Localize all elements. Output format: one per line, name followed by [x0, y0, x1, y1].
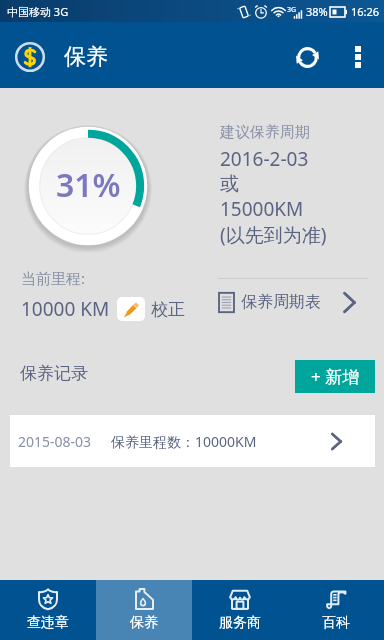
- staticText: 10000 KM: [21, 296, 110, 322]
- staticText: 15000KM: [220, 196, 304, 222]
- button[interactable]: Refresh: [282, 32, 332, 82]
- staticText: 保养周期表: [241, 292, 321, 312]
- staticText: 31%: [56, 163, 121, 207]
- staticText: 2015-08-03: [18, 432, 92, 451]
- button[interactable]: 保养周期表: [218, 288, 370, 316]
- button[interactable]: + 新增: [295, 360, 375, 393]
- button[interactable]: 查违章: [0, 580, 96, 640]
- button[interactable]: 保养: [96, 580, 192, 640]
- staticText: 建议保养周期: [220, 123, 310, 142]
- staticText: 2016-2-03: [220, 146, 309, 172]
- staticText: 保养里程数：10000KM: [111, 432, 257, 451]
- staticText: 或: [220, 172, 239, 196]
- staticText: 校正: [151, 299, 185, 320]
- button[interactable]: More options: [336, 35, 380, 79]
- staticText: 中国移动 3G: [7, 4, 69, 19]
- button[interactable]: 校正: [117, 297, 185, 321]
- staticText: 3G: [287, 5, 297, 15]
- staticText: 38%: [306, 4, 328, 19]
- staticText: 百科: [322, 614, 350, 632]
- button[interactable]: 百科: [288, 580, 384, 640]
- staticText: 服务商: [219, 614, 261, 632]
- staticText: 保养记录: [20, 363, 88, 384]
- staticText: 保养: [64, 43, 108, 71]
- staticText: 保养: [130, 614, 158, 632]
- staticText: (以先到为准): [220, 222, 327, 248]
- staticText: 查违章: [27, 614, 69, 632]
- staticText: 当前里程:: [21, 268, 86, 288]
- staticText: 16:26: [351, 4, 380, 19]
- button[interactable]: 服务商: [192, 580, 288, 640]
- button[interactable]: App logo: [14, 41, 46, 73]
- staticText: + 新增: [311, 365, 360, 388]
- button[interactable]: 2015-08-03: [10, 415, 375, 467]
